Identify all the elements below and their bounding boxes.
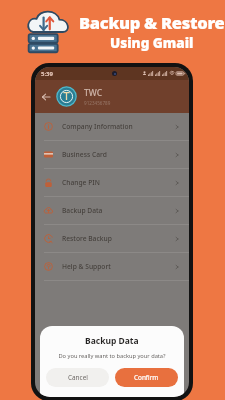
button[interactable]: Restore Backup (35, 225, 189, 253)
staticText: Do you really want to backup your data? (58, 352, 166, 360)
staticText: TWC (84, 87, 103, 99)
staticText: Backup Data (85, 335, 139, 347)
staticText: Backup & Restore (79, 11, 225, 33)
staticText: Cancel (68, 373, 88, 382)
button[interactable]: Confirm (115, 368, 178, 387)
button[interactable]: Company Information (35, 113, 189, 141)
staticText: 5:39 (41, 70, 53, 78)
button[interactable]: Back (35, 86, 56, 107)
button[interactable]: Cancel (46, 368, 109, 387)
staticText: Backup Data (62, 206, 103, 215)
staticText: Business Card (62, 150, 107, 159)
button[interactable]: Help & Support (35, 253, 189, 281)
staticText: Company Information (62, 122, 133, 131)
staticText: 9123456789 (84, 100, 111, 106)
button[interactable]: Change PIN (35, 169, 189, 197)
button[interactable]: Backup Data (35, 197, 189, 225)
button[interactable]: Business Card (35, 141, 189, 169)
staticText: Using Gmail (110, 34, 194, 52)
staticText: Confirm (134, 373, 159, 382)
staticText: Help & Support (62, 262, 111, 271)
staticText: Change PIN (62, 178, 100, 187)
staticText: Restore Backup (62, 234, 112, 243)
